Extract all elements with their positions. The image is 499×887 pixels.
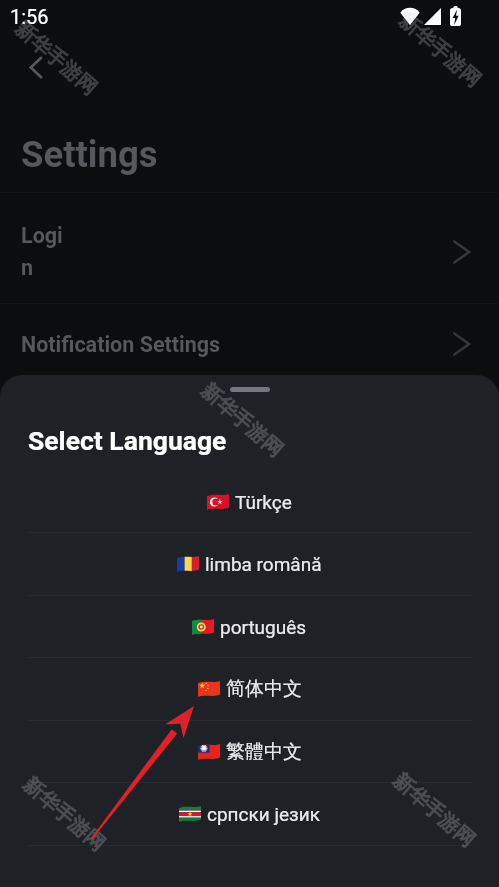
button[interactable]: português <box>0 595 499 658</box>
staticText: português <box>220 616 307 638</box>
button[interactable]: Notification Settings <box>0 303 499 385</box>
staticText: 新华手游网 <box>388 768 480 853</box>
staticText: српски језик <box>207 803 320 825</box>
button[interactable]: Login <box>0 196 499 307</box>
button[interactable]: limba română <box>0 532 499 595</box>
staticText: 繁體中文 <box>226 740 302 764</box>
button[interactable]: 繁體中文 <box>0 720 499 783</box>
staticText: Notification Settings <box>21 332 261 357</box>
staticText: 新华手游网 <box>196 378 288 463</box>
button[interactable]: српски језик <box>0 782 499 845</box>
button[interactable]: Türkçe <box>0 470 499 533</box>
staticText: Türkçe <box>235 491 292 513</box>
button[interactable]: Back <box>14 45 58 89</box>
staticText: limba română <box>205 553 322 575</box>
staticText: 新华手游网 <box>394 8 486 93</box>
staticText: Select Language <box>28 425 227 456</box>
staticText: Login <box>21 223 67 281</box>
staticText: 1:56 <box>10 5 49 28</box>
button[interactable]: 简体中文 <box>0 657 499 720</box>
staticText: 新华手游网 <box>18 772 110 857</box>
staticText: 新华手游网 <box>10 16 102 101</box>
staticText: Settings <box>21 133 158 176</box>
staticText: 简体中文 <box>226 677 302 701</box>
